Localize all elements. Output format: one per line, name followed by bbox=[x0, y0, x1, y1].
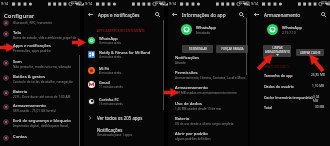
button[interactable]: Mi Fit bbox=[84, 66, 164, 76]
staticText: 1,46 MB usados desde 19 de mai bbox=[175, 107, 222, 111]
staticText: 2.19.7.10 bbox=[282, 31, 296, 35]
button[interactable]: Search bbox=[154, 11, 161, 18]
button[interactable]: Uso de dados bbox=[168, 100, 248, 112]
button[interactable]: Search bbox=[320, 11, 327, 18]
staticText: Tamanho do app bbox=[264, 73, 293, 78]
staticText: Ativado bbox=[175, 61, 186, 65]
button[interactable]: Search bbox=[238, 11, 245, 18]
staticText: Configurar bbox=[4, 12, 35, 20]
staticText: Controle de teclas de atalho, navegação … bbox=[13, 80, 80, 84]
button[interactable]: Botões & gestos bbox=[0, 74, 80, 84]
button[interactable]: Armazenamento bbox=[0, 103, 80, 113]
button[interactable]: Ver todos os 205 apps bbox=[84, 112, 164, 123]
staticText: Corinha FC bbox=[99, 97, 119, 102]
button[interactable]: Abrir por padrão bbox=[168, 130, 248, 142]
staticText: 9:14 bbox=[1, 1, 9, 6]
button[interactable]: Contas bbox=[0, 134, 80, 144]
button[interactable]: Bluetooth, NFC, transmitir bbox=[0, 19, 80, 27]
staticText: Instalado bbox=[196, 31, 211, 35]
staticText: WhatsApp bbox=[99, 36, 118, 41]
staticText: 22% bbox=[71, 1, 78, 5]
button[interactable]: Bateria bbox=[0, 89, 80, 99]
staticText: Total bbox=[264, 105, 273, 110]
button[interactable]: Back bbox=[171, 11, 178, 18]
staticText: 9:14 bbox=[85, 1, 93, 6]
staticText: 30 MB bbox=[315, 105, 325, 109]
button[interactable]: Notificações bbox=[168, 54, 248, 66]
button[interactable]: LIMPAR CACHE bbox=[296, 49, 324, 56]
staticText: 9:14 bbox=[251, 1, 259, 6]
staticText: Notificações bbox=[97, 127, 123, 133]
staticText: DESINSTALAR bbox=[189, 47, 207, 51]
staticText: Armazenamento bbox=[175, 85, 208, 91]
button[interactable]: LIMPAR ARMAZENAMENTO bbox=[263, 45, 291, 57]
staticText: Notify & Fitness for Mi Band bbox=[99, 50, 151, 55]
button[interactable]: Back bbox=[87, 11, 94, 18]
staticText: Gmail bbox=[99, 80, 110, 85]
staticText: Cache (memória temporária) bbox=[264, 95, 313, 100]
button[interactable]: DESINSTALAR bbox=[182, 45, 213, 53]
staticText: Apps e notificações bbox=[13, 43, 51, 49]
staticText: ESPAÇO UTILIZADO bbox=[263, 65, 289, 69]
staticText: WhatsApp bbox=[196, 25, 217, 31]
staticText: 22% bbox=[239, 1, 246, 5]
button[interactable]: FORÇAR PARADA bbox=[216, 45, 248, 53]
staticText: 0% de uso desde a última carga completa bbox=[175, 122, 234, 126]
staticText: LIMPAR CACHE bbox=[300, 51, 321, 55]
staticText: 15 minutos atrás bbox=[99, 102, 123, 106]
button[interactable]: Tela bbox=[0, 30, 80, 40]
staticText: Bateria bbox=[175, 116, 190, 122]
button[interactable]: Permissões bbox=[168, 69, 248, 81]
button[interactable]: Armazenamento bbox=[168, 84, 248, 96]
staticText: FORÇAR PARADA bbox=[221, 47, 244, 51]
staticText: Desativado para 1 apps bbox=[97, 133, 133, 137]
staticText: Permissões, apps padrão bbox=[13, 49, 51, 53]
staticText: APPS ABERTOS RECENTEMENTE bbox=[97, 29, 145, 33]
staticText: Apps e notificações bbox=[98, 12, 140, 18]
staticText: Armazenamento bbox=[264, 12, 301, 18]
staticText: Informações do app bbox=[182, 12, 226, 18]
staticText: Impressão digital, desbloqueio facial, f… bbox=[13, 124, 80, 128]
staticText: Armazenamento bbox=[13, 103, 46, 109]
staticText: 11 minutos atrás bbox=[99, 85, 123, 89]
staticText: 4 minutos atrás bbox=[99, 55, 121, 59]
button[interactable]: Ecrã de segurança e bloqueio bbox=[0, 118, 80, 128]
staticText: 26,85 MB bbox=[311, 73, 325, 77]
staticText: Permissões bbox=[175, 70, 198, 76]
staticText: Som bbox=[13, 59, 22, 65]
staticText: Contas bbox=[13, 134, 27, 140]
button[interactable]: WhatsApp bbox=[84, 36, 164, 46]
staticText: Bateria bbox=[13, 89, 28, 95]
staticText: Armazenamento, Câmera, Contatos, Local e… bbox=[175, 76, 248, 80]
staticText: Ecrã de segurança e bloqueio bbox=[13, 118, 71, 124]
staticText: 22% bbox=[155, 1, 162, 5]
staticText: 3,04 MB bbox=[313, 95, 325, 102]
staticText: WhatsApp bbox=[282, 25, 303, 31]
staticText: 147 MB usados em armazenamento interno bbox=[175, 91, 237, 95]
staticText: Bluetooth, NFC, transmitir bbox=[13, 21, 53, 25]
staticText: 8 minutos atrás bbox=[99, 71, 121, 75]
staticText: Abrir por padrão bbox=[175, 131, 208, 137]
staticText: 3 minutos atrás bbox=[99, 41, 121, 45]
staticText: Tela bbox=[13, 30, 21, 36]
button[interactable]: Gmail bbox=[84, 80, 164, 90]
staticText: Barra de estado, vídeo ambiente, papel d… bbox=[13, 36, 80, 40]
staticText: alguns padrões definidos bbox=[175, 137, 211, 141]
staticText: Notificações bbox=[175, 55, 200, 61]
staticText: Botões & gestos bbox=[13, 74, 45, 80]
staticText: 22% - Deve durar até cerca de 1:00 AM bbox=[13, 95, 71, 99]
staticText: Dados do usuário bbox=[264, 84, 294, 89]
button[interactable]: Apps e notificações bbox=[0, 43, 80, 53]
button[interactable]: Corinha FC bbox=[84, 97, 164, 107]
staticText: 9:14 bbox=[169, 1, 177, 6]
button[interactable]: Back bbox=[253, 11, 260, 18]
staticText: Mi Fit bbox=[99, 66, 109, 71]
staticText: Não perturbe, modo noturno, vibração bbox=[13, 65, 72, 69]
staticText: Uso de dados bbox=[175, 101, 202, 107]
button[interactable]: Som bbox=[0, 59, 80, 69]
button[interactable]: Bateria bbox=[168, 115, 248, 127]
button[interactable]: Notify & Fitness for Mi Band bbox=[84, 50, 164, 60]
staticText: 58% usado - 75,01 GB livre(s) bbox=[13, 109, 56, 113]
staticText: LIMPAR ARMAZENAMENTO bbox=[265, 46, 290, 53]
staticText: 1,10 MB bbox=[312, 84, 325, 88]
